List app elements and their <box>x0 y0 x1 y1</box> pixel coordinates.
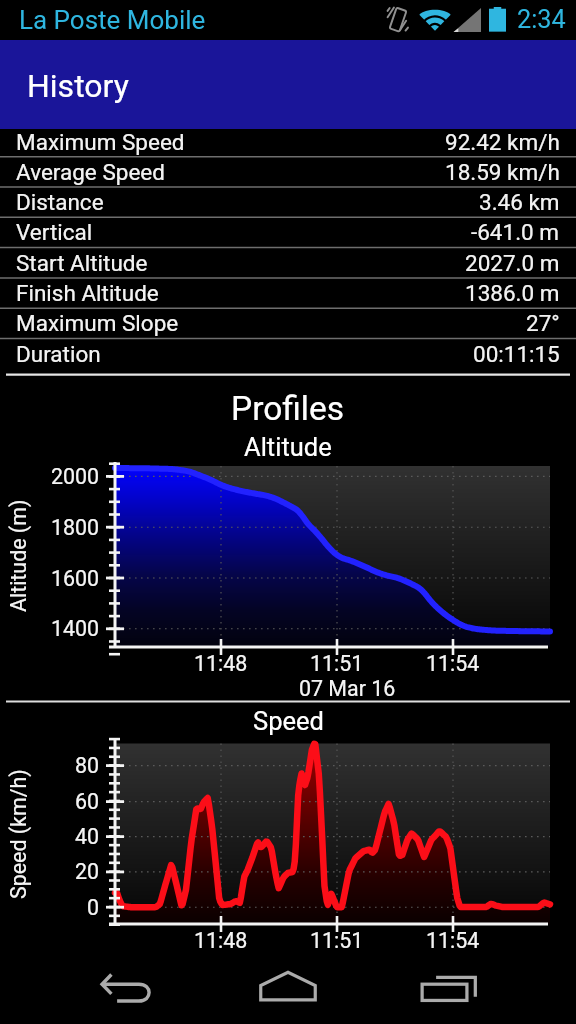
staticText: 60 <box>75 789 100 814</box>
staticText: La Poste Mobile <box>19 5 206 35</box>
staticText: History <box>27 67 129 105</box>
staticText: 11:48 <box>194 651 248 676</box>
staticText: 80 <box>75 753 100 778</box>
button[interactable]: Home <box>245 952 331 1024</box>
staticText: Vertical <box>16 219 93 245</box>
staticText: 11:54 <box>426 651 480 676</box>
staticText: Average Speed <box>16 159 165 185</box>
button[interactable] <box>0 187 576 217</box>
staticText: 92.42 km/h <box>445 129 560 155</box>
button[interactable] <box>0 126 576 156</box>
button[interactable] <box>0 278 576 308</box>
button[interactable] <box>0 217 576 247</box>
staticText: 1600 <box>51 566 100 591</box>
staticText: Start Altitude <box>16 250 148 276</box>
staticText: -641.0 m <box>471 219 560 245</box>
staticText: 07 Mar 16 <box>299 676 396 701</box>
staticText: 11:51 <box>310 651 364 676</box>
staticText: 27° <box>526 310 560 336</box>
staticText: Distance <box>16 189 104 215</box>
staticText: Profiles <box>231 389 345 428</box>
button[interactable] <box>0 308 576 338</box>
staticText: Speed <box>253 706 324 736</box>
staticText: Altitude <box>244 432 332 462</box>
button[interactable]: Recent apps <box>406 952 492 1024</box>
staticText: Duration <box>16 341 101 367</box>
staticText: 2000 <box>51 464 100 489</box>
button[interactable] <box>0 339 576 369</box>
staticText: 18.59 km/h <box>445 159 560 185</box>
staticText: 1400 <box>51 616 100 641</box>
staticText: 0 <box>87 895 100 920</box>
staticText: 11:54 <box>426 928 480 953</box>
staticText: 1386.0 m <box>465 280 560 306</box>
staticText: 00:11:15 <box>473 341 560 367</box>
staticText: 3.46 km <box>479 189 560 215</box>
staticText: 2:34 <box>517 5 566 35</box>
staticText: Maximum Speed <box>16 129 185 155</box>
staticText: Speed (km/h) <box>6 769 31 899</box>
button[interactable]: History <box>0 40 576 129</box>
staticText: Maximum Slope <box>16 310 179 336</box>
button[interactable] <box>0 248 576 278</box>
button[interactable] <box>0 157 576 187</box>
staticText: 1800 <box>51 515 100 540</box>
button[interactable]: Back <box>84 952 170 1024</box>
staticText: 11:48 <box>194 928 248 953</box>
staticText: 20 <box>75 859 100 884</box>
staticText: Finish Altitude <box>16 280 159 306</box>
staticText: 2027.0 m <box>465 250 560 276</box>
staticText: 11:51 <box>310 928 364 953</box>
staticText: Altitude (m) <box>6 499 31 612</box>
staticText: 40 <box>75 824 100 849</box>
